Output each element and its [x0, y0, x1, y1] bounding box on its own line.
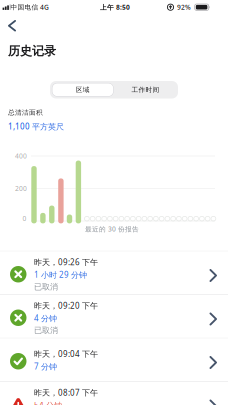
staticText: 历史记录: [8, 44, 56, 58]
staticText: 0: [22, 214, 26, 223]
staticText: 已取消: [34, 282, 58, 292]
staticText: 4 分钟: [34, 313, 57, 323]
staticText: 昨天，09:20 下午: [34, 300, 98, 311]
staticText: 400: [15, 152, 27, 160]
staticText: 1,100 平方英尺: [8, 121, 64, 132]
staticText: 昨天，09:26 下午: [34, 257, 98, 267]
staticText: 已取消: [34, 325, 58, 335]
staticText: 昨天，09:04 下午: [34, 348, 98, 359]
staticText: 7 分钟: [34, 361, 57, 372]
staticText: 54 分钟: [34, 400, 62, 405]
button[interactable]: 区域: [52, 83, 114, 97]
staticText: 4G: [40, 3, 49, 12]
staticText: 200: [15, 184, 27, 193]
staticText: 工作时间: [131, 86, 159, 94]
staticText: 中国电信: [10, 3, 38, 11]
staticText: 最近的 30 份报告: [85, 225, 139, 233]
button[interactable]: 昨天，09:20 下午: [0, 295, 228, 338]
button[interactable]: 昨天，09:04 下午: [0, 338, 228, 381]
button[interactable]: 工作时间: [114, 83, 176, 97]
button[interactable]: 返回: [0, 14, 16, 32]
staticText: 昨天，08:07 下午: [34, 387, 98, 398]
staticText: 上午 8:50: [100, 3, 130, 12]
staticText: 区域: [76, 86, 90, 94]
staticText: 总清洁面积: [8, 108, 43, 117]
button[interactable]: 昨天，08:07 下午: [0, 382, 228, 405]
staticText: 1 小时 29 分钟: [34, 269, 87, 280]
staticText: 92%: [177, 3, 191, 12]
button[interactable]: 昨天，09:26 下午: [0, 251, 228, 294]
